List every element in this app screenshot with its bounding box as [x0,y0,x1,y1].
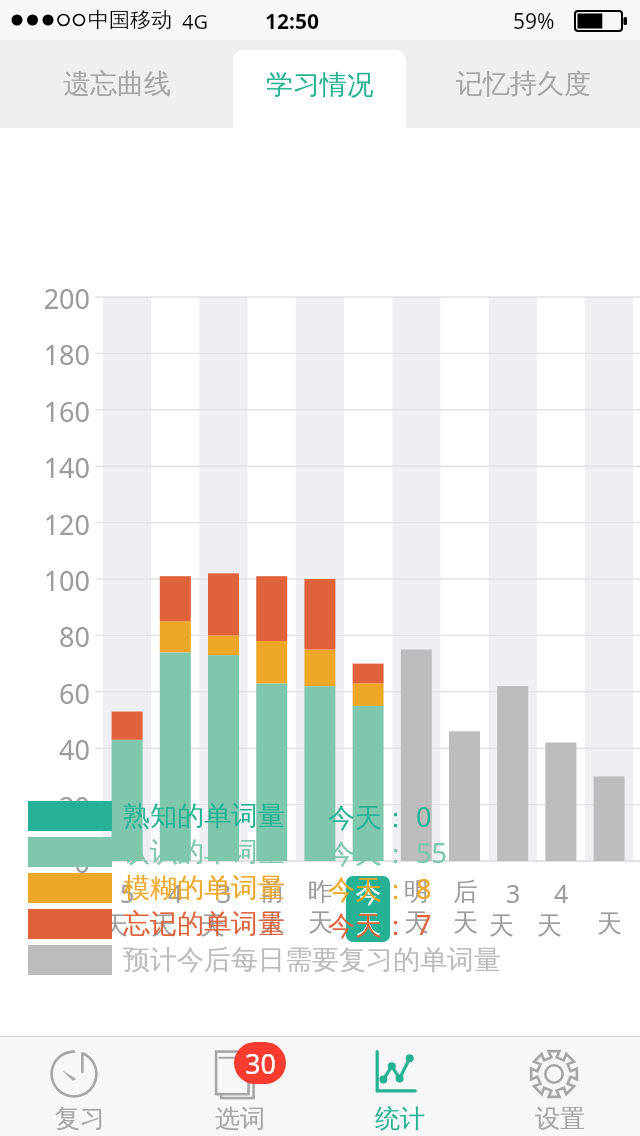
button[interactable]: 复习 [0,1037,160,1136]
staticText: 今天： 0 [328,798,432,834]
staticText: 设置 [535,1103,585,1134]
staticText: 60 [18,675,90,712]
staticText: 100 [18,562,90,599]
staticText: 认识的单词量 [123,835,285,869]
staticText: 80 [18,618,90,655]
staticText: 选词 [215,1103,265,1134]
staticText: 遗忘曲线 [63,67,171,101]
staticText: 30 [245,1045,276,1082]
staticText: 预计今后每日需要复习的单词量 [123,943,501,977]
staticText: 今 [356,878,381,909]
staticText: 统计 [375,1103,425,1134]
staticText: 天前 [151,910,199,941]
button[interactable]: 设置 [480,1037,640,1136]
staticText: 后 [453,876,478,907]
staticText: 天前 [200,910,248,941]
staticText: 复习 [55,1103,105,1134]
staticText: 模糊的单词量 [123,871,285,905]
button[interactable]: 学习情况 [233,50,406,128]
staticText: 学习情况 [266,68,374,102]
staticText: 3 [217,876,232,910]
staticText: 记忆持久度 [456,67,591,101]
staticText: 天 [308,907,333,938]
staticText: 天后 [489,910,537,941]
button[interactable]: 记忆持久度 [406,40,640,128]
button[interactable]: 选词 [160,1037,320,1136]
staticText: 昨 [308,876,333,907]
staticText: 今天： 7 [328,906,432,942]
staticText: 熟知的单词量 [123,799,285,833]
staticText: 今天： 55 [328,834,447,870]
staticText: 4G [182,8,208,35]
staticText: 160 [18,393,90,430]
staticText: 今天： 8 [328,870,432,906]
staticText: 120 [18,506,90,543]
staticText: 0 [18,844,90,881]
staticText: 3 [506,876,521,910]
staticText: 20 [18,788,90,825]
button[interactable]: 遗忘曲线 [0,40,233,128]
staticText: 忘记的单词量 [123,907,285,941]
button[interactable]: 统计 [320,1037,480,1136]
staticText: 5 [120,876,135,910]
staticText: 天前 [103,910,151,941]
staticText: 天 [356,909,381,940]
staticText: 天 [597,908,622,939]
staticText: 180 [18,336,90,373]
staticText: 天 [404,907,429,938]
staticText: 明 [404,876,429,907]
staticText: 天 [260,907,285,938]
staticText: 200 [18,280,90,317]
staticText: 天 [453,907,478,938]
staticText: 中国移动 [88,7,172,33]
staticText: 140 [18,449,90,486]
staticText: 12:50 [265,7,319,36]
staticText: 4 [554,876,569,910]
staticText: 天后 [537,910,585,941]
staticText: 4 [168,876,183,910]
staticText: 59% [513,7,555,36]
staticText: 40 [18,731,90,768]
staticText: 前 [260,876,285,907]
